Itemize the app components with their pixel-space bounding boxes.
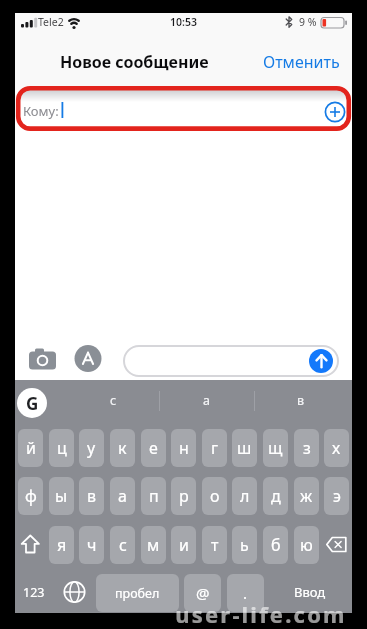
button[interactable]: у xyxy=(79,429,104,467)
staticText: пробел xyxy=(115,585,160,602)
button[interactable]: г xyxy=(202,429,227,467)
staticText: а xyxy=(118,485,127,507)
staticText: Tele2 xyxy=(38,15,64,29)
button[interactable]: . xyxy=(227,574,264,612)
staticText: Кому: xyxy=(23,102,59,120)
staticText: щ xyxy=(268,437,283,459)
button[interactable]: ю xyxy=(294,526,319,564)
button[interactable]: ь xyxy=(232,526,257,564)
staticText: 9 % xyxy=(299,15,317,29)
staticText: х xyxy=(332,437,341,459)
button[interactable]: ф xyxy=(18,477,43,515)
button[interactable]: е xyxy=(141,429,166,467)
staticText: Новое сообщение xyxy=(60,51,209,71)
staticText: э xyxy=(333,485,341,507)
staticText: 123 xyxy=(23,584,45,601)
staticText: д xyxy=(271,485,281,507)
staticText: ф xyxy=(25,485,37,507)
button[interactable]: о xyxy=(202,477,227,515)
button[interactable]: ч xyxy=(79,526,104,564)
staticText: о xyxy=(210,485,220,507)
button[interactable]: н xyxy=(171,429,196,467)
staticText: н xyxy=(179,437,189,459)
staticText: б xyxy=(271,534,281,556)
button[interactable]: Ввод xyxy=(275,583,345,601)
staticText: Отменить xyxy=(263,51,340,71)
staticText: я xyxy=(57,534,67,556)
button[interactable]: р xyxy=(171,477,196,515)
button[interactable]: ш xyxy=(232,429,257,467)
button[interactable]: м xyxy=(141,526,166,564)
staticText: ы xyxy=(55,485,68,507)
staticText: в xyxy=(87,485,97,507)
button[interactable]: G xyxy=(17,388,47,418)
staticText: ч xyxy=(87,534,97,556)
staticText: з xyxy=(303,437,311,459)
staticText: л xyxy=(240,485,250,507)
staticText: п xyxy=(149,485,159,507)
staticText: Ввод xyxy=(294,583,326,601)
button[interactable]: ц xyxy=(49,429,74,467)
button[interactable]: д xyxy=(263,477,288,515)
staticText: м xyxy=(147,534,160,556)
staticText: ж xyxy=(300,485,313,507)
button[interactable]: з xyxy=(294,429,319,467)
staticText: у xyxy=(87,437,96,459)
staticText: . xyxy=(243,583,248,603)
button[interactable]: б xyxy=(263,526,288,564)
button[interactable]: т xyxy=(202,526,227,564)
button[interactable] xyxy=(18,88,349,128)
button[interactable]: а xyxy=(110,477,135,515)
button[interactable]: ы xyxy=(49,477,74,515)
button[interactable]: 123 xyxy=(22,583,46,601)
button[interactable]: с xyxy=(73,391,153,409)
button[interactable]: л xyxy=(232,477,257,515)
button[interactable] xyxy=(123,345,339,377)
staticText: с xyxy=(110,392,117,409)
staticText: и xyxy=(179,534,189,556)
button[interactable]: х xyxy=(324,429,349,467)
staticText: 10:53 xyxy=(170,15,197,29)
staticText: в xyxy=(297,392,305,409)
button[interactable]: э xyxy=(324,477,349,515)
button[interactable] xyxy=(309,349,333,373)
button[interactable]: й xyxy=(18,429,43,467)
button[interactable]: пробел xyxy=(96,574,179,612)
button[interactable]: ж xyxy=(294,477,319,515)
button[interactable]: а xyxy=(166,391,246,409)
staticText: user-life.com xyxy=(175,599,347,623)
staticText: с xyxy=(119,534,127,556)
staticText: ь xyxy=(240,534,249,556)
button[interactable]: щ xyxy=(263,429,288,467)
staticText: G xyxy=(26,392,39,415)
staticText: @ xyxy=(196,583,210,603)
button[interactable]: к xyxy=(110,429,135,467)
button[interactable]: в xyxy=(261,391,341,409)
button[interactable]: я xyxy=(49,526,74,564)
staticText: р xyxy=(179,485,189,507)
staticText: а xyxy=(203,392,210,409)
staticText: е xyxy=(149,437,158,459)
button[interactable]: в xyxy=(79,477,104,515)
staticText: ю xyxy=(300,534,313,556)
staticText: й xyxy=(26,437,36,459)
button[interactable]: п xyxy=(141,477,166,515)
button[interactable]: Отменить xyxy=(258,51,344,71)
staticText: к xyxy=(118,437,127,459)
staticText: г xyxy=(211,437,219,459)
button[interactable]: с xyxy=(110,526,135,564)
staticText: ц xyxy=(57,437,67,459)
staticText: т xyxy=(211,534,219,556)
button[interactable]: и xyxy=(171,526,196,564)
staticText: ш xyxy=(237,437,252,459)
button[interactable]: @ xyxy=(184,574,221,612)
